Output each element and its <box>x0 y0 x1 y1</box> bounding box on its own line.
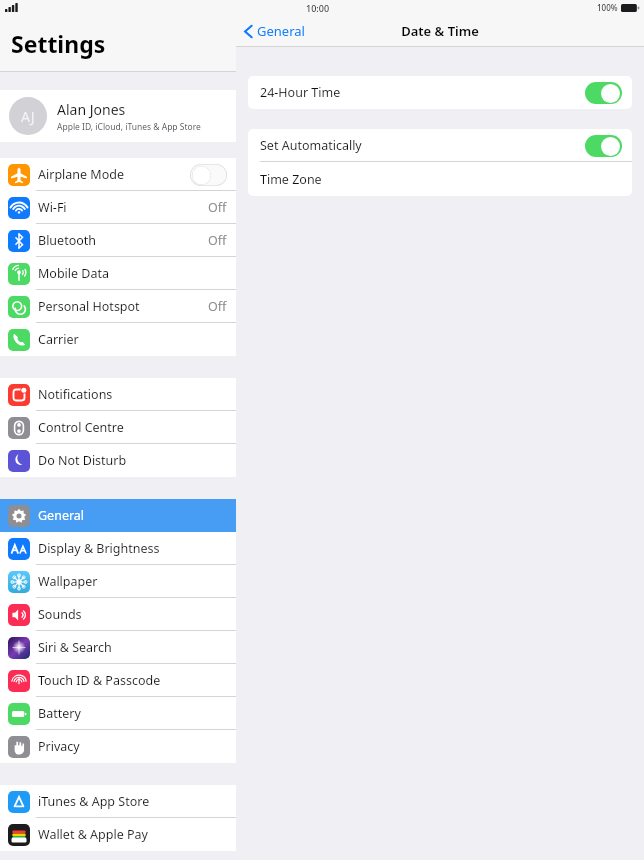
staticText: Do Not Disturb <box>38 452 127 469</box>
button[interactable]: Do Not Disturb <box>0 444 236 477</box>
button[interactable]: Bluetooth <box>0 224 236 257</box>
button[interactable]: Touch ID & Passcode <box>0 664 236 697</box>
staticText: 10:00 <box>306 2 330 14</box>
button[interactable]: Privacy <box>0 730 236 763</box>
staticText: General <box>257 22 305 40</box>
button[interactable]: Back to General <box>244 22 305 40</box>
staticText: Wallpaper <box>38 573 98 590</box>
staticText: Control Centre <box>38 419 124 436</box>
button[interactable]: Carrier <box>0 323 236 356</box>
button[interactable] <box>585 135 622 157</box>
staticText: Siri & Search <box>38 639 112 656</box>
staticText: Touch ID & Passcode <box>38 672 161 689</box>
staticText: Off <box>208 232 227 249</box>
staticText: Notifications <box>38 386 113 403</box>
button[interactable]: AJ <box>0 90 236 142</box>
button[interactable] <box>585 82 622 104</box>
staticText: Airplane Mode <box>38 166 124 183</box>
staticText: Personal Hotspot <box>38 298 140 315</box>
button[interactable]: Personal Hotspot <box>0 290 236 323</box>
staticText: Time Zone <box>260 171 322 188</box>
staticText: Display & Brightness <box>38 540 160 557</box>
button[interactable]: Wallet & Apple Pay <box>0 818 236 851</box>
staticText: Battery <box>38 705 81 722</box>
button[interactable]: 24-Hour Time <box>248 76 632 109</box>
button[interactable]: Set Automatically <box>248 129 632 162</box>
button[interactable]: Time Zone <box>248 162 632 196</box>
button[interactable]: Wi-Fi <box>0 191 236 224</box>
staticText: AJ <box>21 107 35 126</box>
button[interactable]: Sounds <box>0 598 236 631</box>
staticText: Wi-Fi <box>38 199 67 216</box>
staticText: General <box>38 507 85 524</box>
staticText: iTunes & App Store <box>38 793 150 810</box>
staticText: Mobile Data <box>38 265 110 282</box>
staticText: 100% <box>597 2 618 13</box>
button[interactable]: Wallpaper <box>0 565 236 598</box>
button[interactable]: Notifications <box>0 378 236 411</box>
staticText: Alan Jones <box>57 100 126 119</box>
button[interactable]: Mobile Data <box>0 257 236 290</box>
staticText: Carrier <box>38 331 79 348</box>
staticText: 24-Hour Time <box>260 84 341 101</box>
button[interactable] <box>190 164 227 186</box>
staticText: Off <box>208 199 227 216</box>
staticText: Off <box>208 298 227 315</box>
staticText: Privacy <box>38 738 80 755</box>
button[interactable]: Display & Brightness <box>0 532 236 565</box>
staticText: Settings <box>11 28 106 59</box>
button[interactable]: Battery <box>0 697 236 730</box>
staticText: Apple ID, iCloud, iTunes & App Store <box>57 121 201 133</box>
staticText: Set Automatically <box>260 137 362 154</box>
button[interactable]: Control Centre <box>0 411 236 444</box>
staticText: Date & Time <box>401 22 479 40</box>
button[interactable]: General <box>0 499 236 532</box>
staticText: Wallet & Apple Pay <box>38 826 148 843</box>
staticText: Bluetooth <box>38 232 97 249</box>
staticText: Sounds <box>38 606 82 623</box>
button[interactable]: Airplane Mode <box>0 158 236 191</box>
button[interactable]: Siri & Search <box>0 631 236 664</box>
button[interactable]: iTunes & App Store <box>0 785 236 818</box>
